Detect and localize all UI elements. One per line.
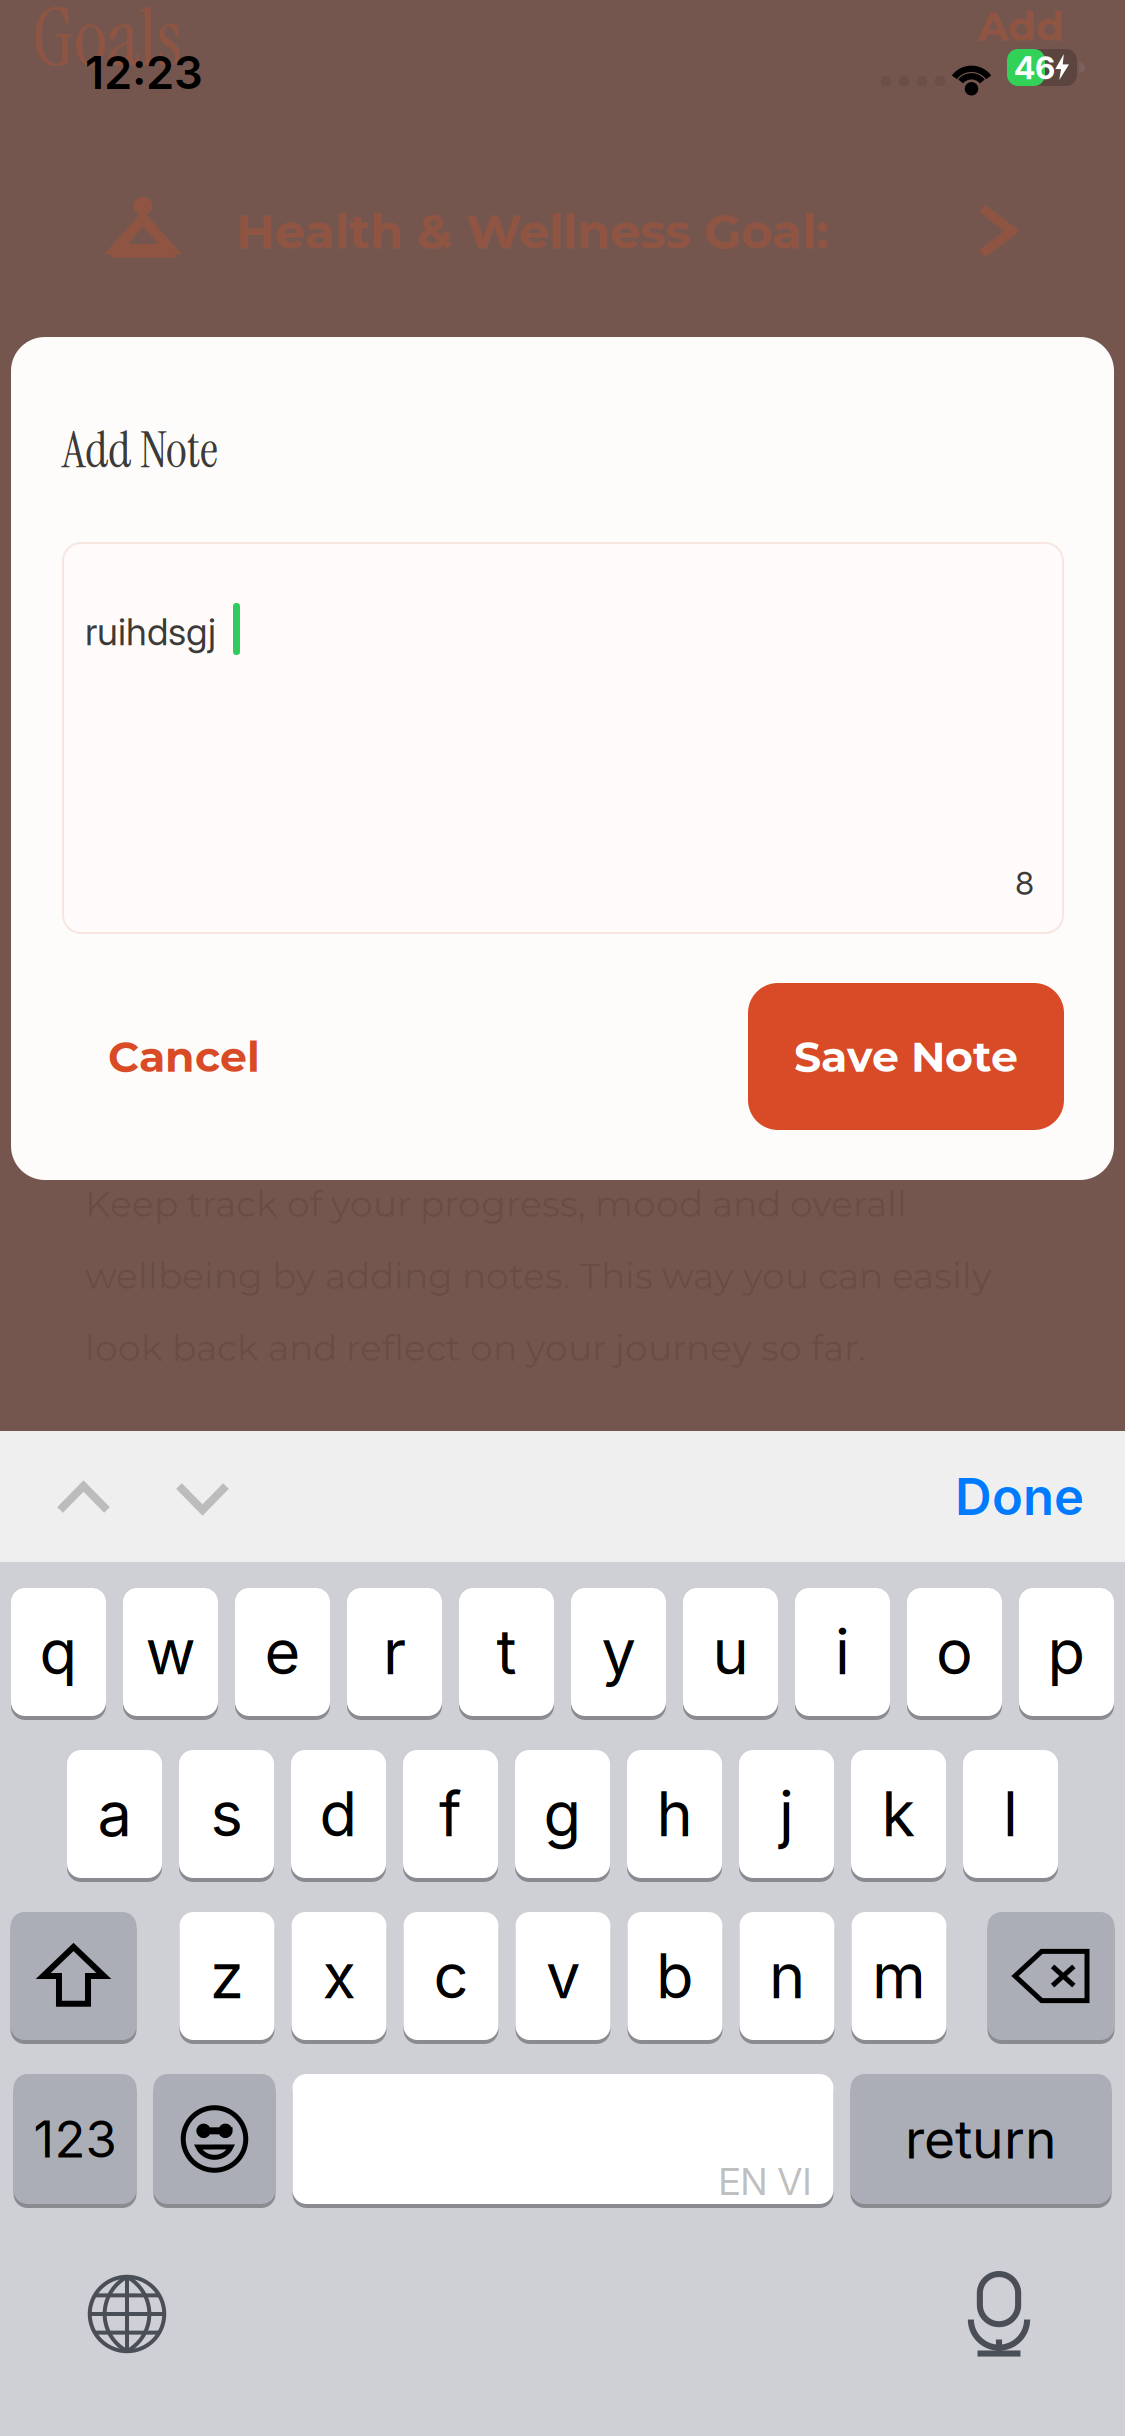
button[interactable]: c	[403, 1910, 498, 2042]
button[interactable]	[153, 2072, 275, 2206]
button[interactable]: a	[67, 1748, 162, 1880]
button[interactable]: q	[11, 1586, 106, 1718]
staticText: wellbeing by adding notes. This way you …	[85, 1254, 992, 1298]
staticText: z	[210, 1939, 244, 2013]
button[interactable]: Previous field	[32, 1432, 135, 1564]
staticText: a	[97, 1777, 131, 1851]
button[interactable]: return	[850, 2072, 1111, 2206]
staticText: 8	[1015, 864, 1034, 902]
staticText: p	[1047, 1615, 1085, 1689]
button[interactable]	[10, 1910, 136, 2042]
staticText: Keep track of your progress, mood and ov…	[85, 1182, 907, 1226]
staticText: Add	[978, 2, 1064, 51]
button[interactable]: s	[179, 1748, 274, 1880]
staticText: s	[210, 1777, 242, 1851]
staticText: t	[496, 1615, 516, 1689]
button[interactable]: d	[291, 1748, 386, 1880]
button[interactable]: g	[515, 1748, 610, 1880]
staticText: h	[656, 1777, 692, 1851]
staticText: u	[712, 1615, 748, 1689]
button[interactable]: w	[123, 1586, 218, 1718]
staticText: 46	[1014, 48, 1055, 87]
button[interactable]: l	[963, 1748, 1058, 1880]
staticText: Goals	[32, 0, 182, 90]
staticText: c	[433, 1939, 468, 2013]
staticText: Cancel	[108, 1030, 260, 1082]
staticText: l	[1003, 1777, 1018, 1851]
button[interactable]: j	[739, 1748, 834, 1880]
button[interactable]: t	[459, 1586, 554, 1718]
staticText: y	[601, 1615, 635, 1689]
button[interactable]: Cancel	[108, 983, 348, 1130]
staticText: x	[322, 1939, 355, 2013]
staticText: ruihdsgj	[85, 609, 216, 654]
button[interactable]: r	[347, 1586, 442, 1718]
staticText: Add Note	[62, 417, 218, 483]
staticText: return	[905, 2107, 1057, 2171]
staticText: b	[656, 1939, 694, 2013]
staticText: EN VI	[718, 2159, 811, 2204]
staticText: r	[383, 1615, 406, 1689]
staticText: Done	[955, 1466, 1084, 1527]
staticText: i	[835, 1615, 850, 1689]
button[interactable]: e	[235, 1586, 330, 1718]
staticText: g	[543, 1777, 581, 1851]
button[interactable]: m	[851, 1910, 946, 2042]
button[interactable]: v	[515, 1910, 610, 2042]
button[interactable]: f	[403, 1748, 498, 1880]
staticText: m	[872, 1939, 926, 2013]
button[interactable]: 123	[13, 2072, 136, 2206]
button[interactable]: EN VI	[292, 2072, 833, 2206]
button[interactable]: p	[1019, 1586, 1114, 1718]
staticText: v	[546, 1939, 580, 2013]
staticText: look back and reflect on your journey so…	[85, 1326, 866, 1370]
button[interactable]: Switch keyboard	[42, 2264, 212, 2364]
button[interactable]: Dictation	[914, 2264, 1084, 2364]
staticText: e	[264, 1615, 300, 1689]
staticText: f	[439, 1777, 462, 1851]
staticText: o	[936, 1615, 973, 1689]
button[interactable]: Save Note	[748, 983, 1064, 1130]
staticText: d	[319, 1777, 357, 1851]
button[interactable]: y	[571, 1586, 666, 1718]
staticText: n	[769, 1939, 805, 2013]
button[interactable]: b	[627, 1910, 722, 2042]
staticText: k	[881, 1777, 915, 1851]
staticText: 12:23	[85, 45, 203, 100]
staticText: q	[39, 1615, 77, 1689]
staticText: Health & Wellness Goal:	[236, 202, 829, 260]
staticText: w	[145, 1615, 195, 1689]
button[interactable]: k	[851, 1748, 946, 1880]
button[interactable]: x	[291, 1910, 386, 2042]
button[interactable]: i	[795, 1586, 890, 1718]
button[interactable]: h	[627, 1748, 722, 1880]
button[interactable]	[987, 1910, 1114, 2042]
button[interactable]: z	[179, 1910, 274, 2042]
staticText: Save Note	[794, 1030, 1018, 1082]
staticText: j	[779, 1777, 794, 1851]
staticText: 123	[33, 2108, 116, 2170]
button[interactable]: Next field	[151, 1432, 254, 1564]
button[interactable]: Done	[955, 1431, 1125, 1562]
button[interactable]: u	[683, 1586, 778, 1718]
button[interactable]: o	[907, 1586, 1002, 1718]
button[interactable]: n	[739, 1910, 834, 2042]
